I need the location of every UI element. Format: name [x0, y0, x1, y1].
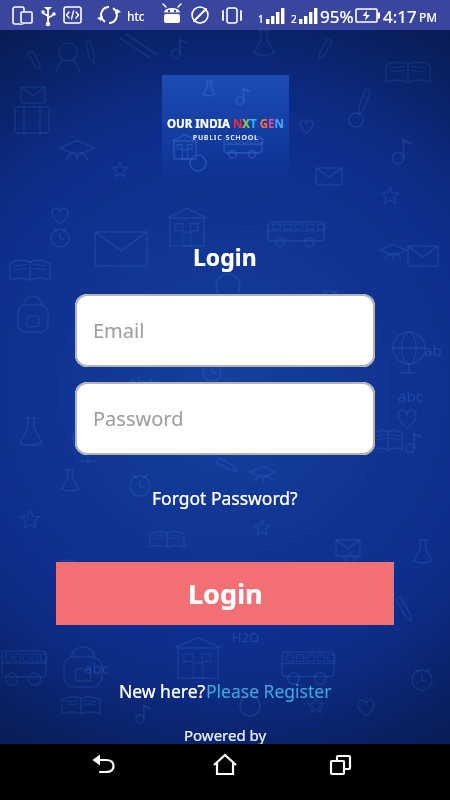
staticText: Password: [93, 405, 184, 432]
staticText: OUR INDIA NXT GEN: [167, 116, 284, 132]
button[interactable]: Please Register: [206, 679, 332, 703]
staticText: abc: [128, 372, 155, 394]
staticText: htc: [127, 8, 145, 24]
staticText: Login: [188, 575, 263, 612]
staticText: abc: [84, 658, 109, 678]
staticText: H2O: [232, 628, 260, 646]
button[interactable]: Forgot Password?: [152, 486, 298, 510]
staticText: Powered by: [184, 725, 267, 745]
staticText: Forgot Password?: [152, 486, 298, 510]
button[interactable]: [150, 744, 300, 800]
button[interactable]: Password: [75, 382, 375, 455]
staticText: Email: [93, 317, 145, 344]
staticText: Login: [193, 241, 257, 272]
button[interactable]: [0, 744, 150, 800]
staticText: 1: [258, 12, 264, 26]
button[interactable]: Email: [75, 294, 375, 367]
button[interactable]: [300, 744, 450, 800]
staticText: 4:17: [383, 5, 417, 28]
button[interactable]: Login: [56, 562, 394, 625]
staticText: abc: [398, 386, 423, 406]
staticText: 95%: [320, 5, 354, 28]
staticText: New here?: [119, 679, 206, 703]
staticText: 2: [291, 12, 297, 26]
staticText: ab: [424, 340, 442, 360]
staticText: PUBLIC SCHOOL: [193, 133, 259, 142]
staticText: PM: [419, 9, 438, 25]
staticText: Please Register: [206, 679, 332, 703]
